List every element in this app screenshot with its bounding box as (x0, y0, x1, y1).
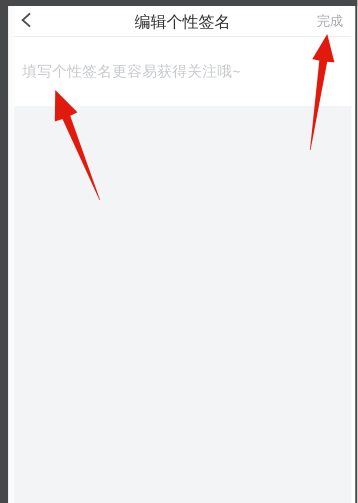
staticText: 编辑个性签名 (134, 12, 230, 32)
button[interactable]: 完成 (309, 6, 357, 36)
button[interactable]: Back (8, 6, 56, 36)
staticText: 填写个性签名更容易获得关注哦~ (22, 61, 240, 80)
staticText: 完成 (317, 13, 343, 29)
